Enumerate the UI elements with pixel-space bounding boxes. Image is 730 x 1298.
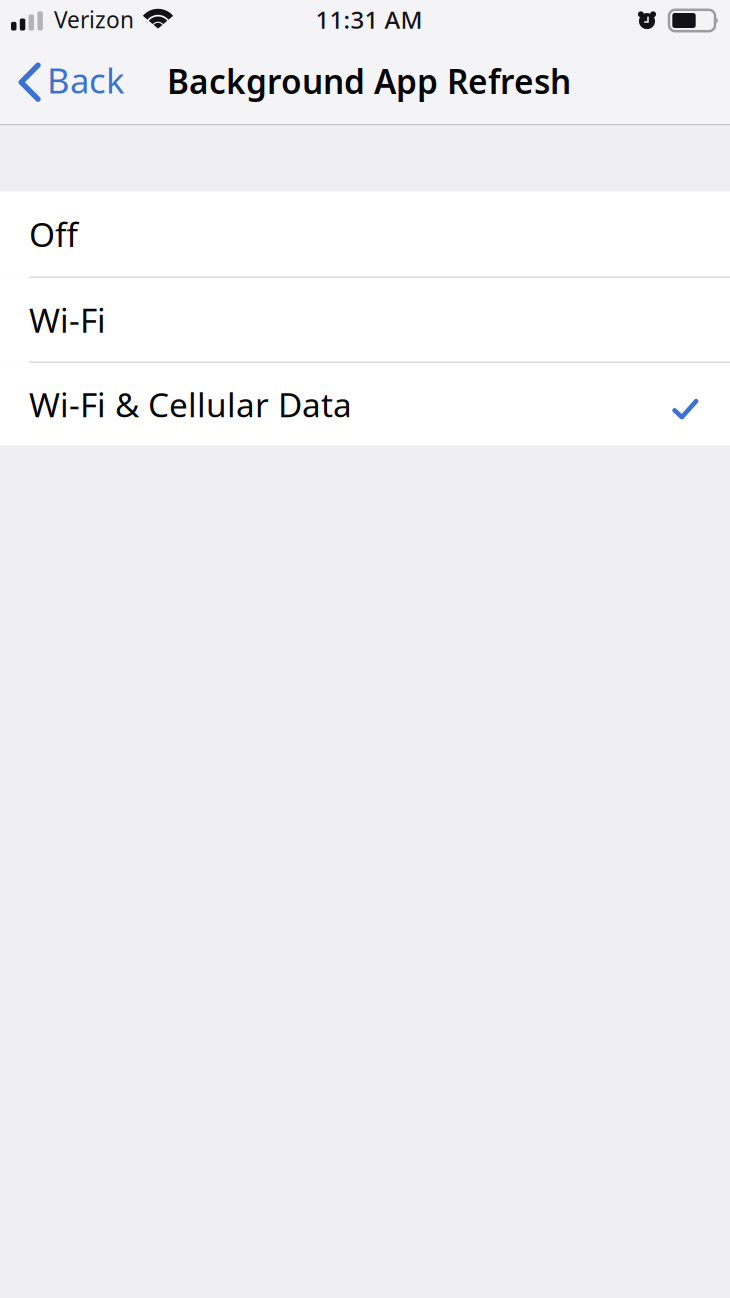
staticText: Wi-Fi & Cellular Data bbox=[29, 382, 352, 426]
staticText: 11:31 AM bbox=[315, 4, 422, 35]
staticText: Verizon bbox=[54, 4, 134, 34]
staticText: Back bbox=[47, 57, 125, 103]
button[interactable]: Wi-Fi & Cellular Data bbox=[0, 361, 730, 445]
staticText: Background App Refresh bbox=[167, 59, 571, 103]
staticText: Off bbox=[29, 212, 78, 256]
button[interactable]: Back bbox=[0, 44, 139, 124]
button[interactable]: Wi-Fi bbox=[0, 276, 730, 361]
button[interactable]: Off bbox=[0, 191, 730, 276]
staticText: Wi-Fi bbox=[29, 298, 106, 342]
